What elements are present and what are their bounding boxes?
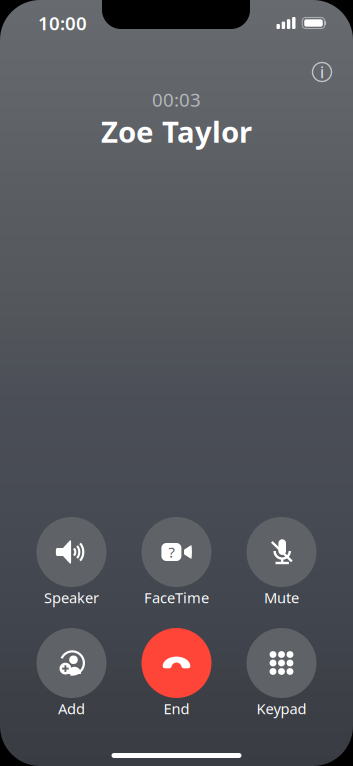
staticText: 00:03	[152, 87, 201, 112]
staticText: Add	[58, 699, 85, 718]
button[interactable]: Mute	[229, 517, 334, 608]
button[interactable]: Keypad	[229, 628, 334, 719]
staticText: 10:00	[38, 11, 87, 35]
button[interactable]: Call details	[302, 52, 342, 92]
button[interactable]: End	[124, 628, 229, 719]
button[interactable]: Add	[19, 628, 124, 719]
staticText: Speaker	[44, 588, 99, 607]
staticText: Keypad	[256, 699, 306, 718]
staticText: i	[320, 61, 324, 83]
staticText: Zoe Taylor	[101, 112, 252, 151]
staticText: Mute	[264, 588, 299, 607]
staticText: ?	[168, 542, 174, 562]
button[interactable]: ?	[124, 517, 229, 608]
staticText: FaceTime	[144, 588, 209, 607]
staticText: End	[163, 699, 189, 718]
button[interactable]: Speaker	[19, 517, 124, 608]
